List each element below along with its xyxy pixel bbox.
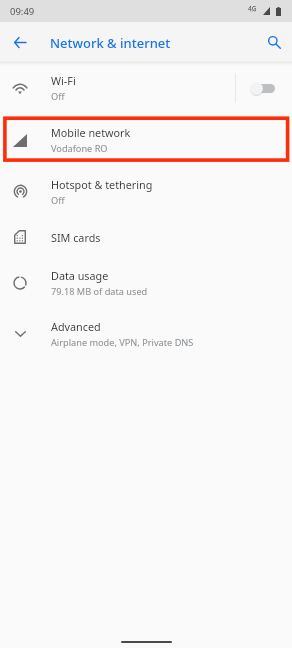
button[interactable]: Mobile network	[0, 114, 292, 166]
staticText: Mobile network	[51, 125, 131, 140]
staticText: LTE	[250, 8, 256, 13]
button[interactable]: Wi-Fi	[0, 62, 292, 114]
staticText: Hotspot & tethering	[51, 177, 153, 192]
button[interactable]: SIM cards	[0, 217, 292, 257]
staticText: Wi-Fi	[51, 73, 76, 88]
button[interactable]: Advanced	[0, 308, 292, 359]
staticText: Advanced	[51, 319, 101, 334]
staticText: Airplane mode, VPN, Private DNS	[51, 336, 194, 349]
button[interactable]: Hotspot & tethering	[0, 166, 292, 217]
staticText: Network & internet	[50, 34, 171, 52]
staticText: Off	[51, 194, 65, 207]
staticText: 4G	[248, 4, 257, 13]
staticText: Data usage	[51, 268, 109, 283]
staticText: 79.18 MB of data used	[51, 285, 148, 298]
button[interactable]: Data usage	[0, 257, 292, 308]
button[interactable]: Wi-Fi on/off	[236, 62, 292, 114]
staticText: 09:49	[10, 5, 35, 18]
staticText: SIM cards	[51, 230, 101, 245]
staticText: Off	[51, 90, 65, 103]
button[interactable]: Navigate up	[6, 22, 34, 62]
button[interactable]: Search	[260, 22, 288, 62]
staticText: Vodafone RO	[51, 142, 108, 155]
